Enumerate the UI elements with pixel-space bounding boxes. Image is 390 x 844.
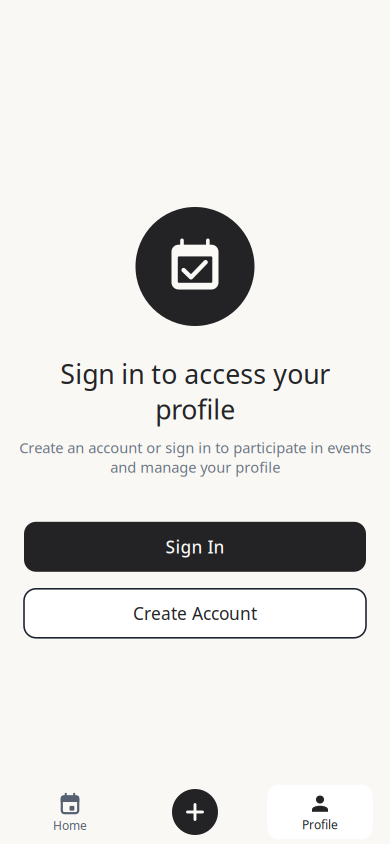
staticText: Create an account or sign in to particip… xyxy=(19,438,371,477)
button[interactable]: Home xyxy=(17,785,123,839)
staticText: Profile xyxy=(302,816,338,832)
staticText: Create Account xyxy=(133,602,257,625)
button[interactable]: Create xyxy=(165,785,225,839)
staticText: Sign in to access your profile xyxy=(60,356,330,427)
button[interactable]: Profile xyxy=(267,785,373,839)
button[interactable]: Sign In xyxy=(24,522,366,572)
staticText: Sign In xyxy=(165,535,224,558)
button[interactable]: Create Account xyxy=(24,589,366,638)
staticText: Home xyxy=(53,817,87,833)
